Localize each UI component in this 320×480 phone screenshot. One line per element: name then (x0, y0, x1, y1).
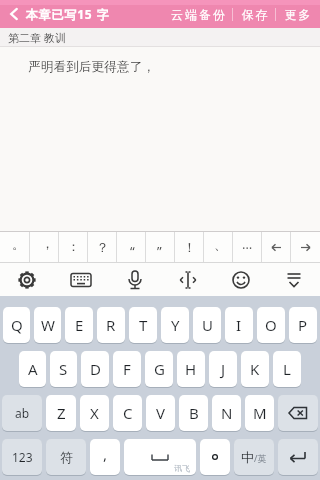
button[interactable]: A (19, 351, 46, 387)
button[interactable]: V (146, 395, 175, 431)
staticText: 123 (12, 449, 33, 465)
button[interactable]: X (80, 395, 109, 431)
button[interactable] (161, 263, 214, 296)
button[interactable]: T (129, 307, 157, 343)
button[interactable]: N (212, 395, 241, 431)
button[interactable]: … (233, 232, 262, 262)
staticText: 第二章 教训 (8, 30, 66, 45)
button[interactable]: 讯飞 (124, 439, 196, 475)
staticText: S (59, 359, 68, 379)
staticText: 本章已写15 字 (26, 6, 110, 22)
button[interactable] (200, 439, 230, 475)
staticText: O (265, 315, 277, 335)
staticText: T (139, 315, 148, 335)
button[interactable] (262, 232, 291, 262)
staticText: U (202, 315, 213, 335)
button[interactable] (54, 263, 108, 296)
staticText: 讯飞 (174, 463, 190, 473)
staticText: ， (41, 235, 54, 251)
button[interactable]: J (209, 351, 237, 387)
button[interactable]: 符 (46, 439, 86, 475)
staticText: L (283, 359, 291, 379)
button[interactable]: B (179, 395, 208, 431)
button[interactable]: C (113, 395, 142, 431)
button[interactable]: , (90, 439, 120, 475)
button[interactable]: P (289, 307, 317, 343)
staticText: ？ (96, 239, 109, 255)
button[interactable]: 中/英 (234, 439, 274, 475)
button[interactable]: S (50, 351, 77, 387)
staticText: H (185, 359, 197, 379)
staticText: I (236, 315, 242, 335)
button[interactable]: 第二章 教训 (0, 28, 320, 47)
staticText: 符 (60, 449, 73, 465)
staticText: Z (57, 403, 66, 423)
button[interactable] (108, 263, 161, 296)
button[interactable]: E (65, 307, 93, 343)
staticText: ” (157, 242, 162, 260)
button[interactable]: K (241, 351, 269, 387)
staticText: Y (171, 315, 180, 335)
button[interactable]: “ (117, 232, 146, 262)
button[interactable]: Y (161, 307, 189, 343)
button[interactable]: 云端备份 (170, 7, 226, 22)
staticText: , (103, 444, 108, 464)
button[interactable] (0, 263, 54, 296)
staticText: D (90, 359, 101, 379)
button[interactable]: ” (146, 232, 175, 262)
button[interactable]: 更多 (284, 7, 311, 22)
staticText: K (250, 359, 260, 379)
button[interactable]: R (97, 307, 125, 343)
button[interactable]: ？ (88, 232, 117, 262)
staticText: C (123, 403, 133, 423)
button[interactable]: W (34, 307, 61, 343)
button[interactable]: ！ (175, 232, 204, 262)
button[interactable]: U (193, 307, 221, 343)
button[interactable]: Z (46, 395, 76, 431)
button[interactable]: ： (59, 232, 88, 262)
button[interactable]: 、 (204, 232, 233, 262)
staticText: R (106, 315, 116, 335)
button[interactable]: O (257, 307, 285, 343)
button[interactable]: Q (3, 307, 30, 343)
staticText: 、 (214, 236, 227, 252)
staticText: X (90, 403, 99, 423)
staticText: E (75, 315, 84, 335)
button[interactable]: 严明看到后更得意了， (0, 47, 320, 231)
staticText: W (41, 315, 55, 335)
button[interactable] (291, 232, 320, 262)
button[interactable]: 。 (0, 232, 30, 262)
button[interactable]: ， (30, 232, 59, 262)
staticText: ab (15, 405, 30, 421)
staticText: G (154, 359, 165, 379)
staticText: 严明看到后更得意了， (28, 59, 155, 75)
staticText: 。 (12, 236, 25, 252)
button[interactable] (214, 263, 267, 296)
button[interactable]: H (177, 351, 205, 387)
staticText: A (28, 359, 38, 379)
button[interactable]: F (113, 351, 141, 387)
staticText: P (298, 315, 308, 335)
staticText: V (156, 403, 166, 423)
staticText: F (123, 359, 131, 379)
staticText: “ (130, 242, 135, 260)
button[interactable] (278, 439, 318, 475)
button[interactable]: 本章已写15 字 (0, 0, 110, 28)
button[interactable]: D (81, 351, 109, 387)
staticText: J (221, 359, 226, 379)
button[interactable]: 123 (2, 439, 42, 475)
staticText: 中/英 (241, 449, 267, 465)
button[interactable]: L (273, 351, 301, 387)
staticText: B (189, 403, 199, 423)
staticText: Q (11, 315, 23, 335)
button[interactable]: M (245, 395, 274, 431)
button[interactable]: 保存 (241, 7, 268, 22)
button[interactable]: ab (2, 395, 42, 431)
staticText: M (253, 403, 267, 423)
staticText: N (221, 403, 233, 423)
button[interactable] (278, 395, 318, 431)
button[interactable]: I (225, 307, 253, 343)
button[interactable] (267, 263, 320, 296)
button[interactable]: G (145, 351, 173, 387)
staticText: … (242, 235, 253, 253)
